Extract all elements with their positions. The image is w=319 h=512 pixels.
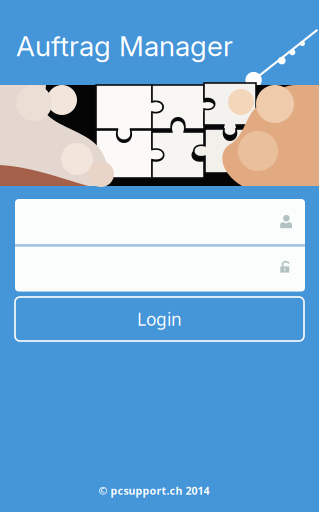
staticText: Auftrag Manager [16,29,233,63]
staticText: © pcsupport.ch 2014 [98,483,209,498]
staticText: Login [137,307,182,330]
button[interactable]: Login [15,297,304,341]
